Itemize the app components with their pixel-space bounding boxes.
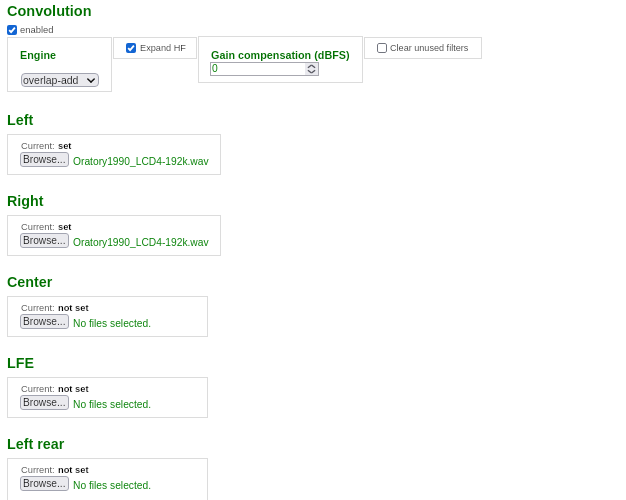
button[interactable]: 0 (210, 62, 319, 76)
button[interactable]: Current: (7, 458, 208, 500)
other: Engine dropdown (86, 75, 96, 85)
staticText: Center (7, 274, 53, 290)
staticText: Left (7, 112, 34, 128)
staticText: Browse... (23, 235, 66, 246)
staticText: set (58, 141, 72, 151)
staticText: No files selected. (73, 480, 152, 491)
staticText: Engine (20, 49, 56, 61)
button[interactable]: Browse... (20, 476, 69, 491)
staticText: Browse... (23, 478, 66, 489)
staticText: not set (58, 465, 89, 475)
button[interactable]: Browse... (20, 152, 69, 167)
staticText: LFE (7, 355, 35, 371)
staticText: No files selected. (73, 318, 152, 329)
staticText: enabled (20, 24, 54, 35)
staticText: Gain compensation (dBFS) (211, 49, 350, 61)
button[interactable]: Current: (7, 296, 208, 337)
staticText: Current: (21, 303, 58, 313)
button[interactable]: overlap-add (21, 73, 99, 87)
button[interactable]: Browse... (20, 314, 69, 329)
staticText: Convolution (7, 3, 92, 19)
staticText: Oratory1990_LCD4-192k.wav (73, 156, 209, 167)
staticText: 0 (212, 63, 218, 75)
staticText: Left rear (7, 436, 65, 452)
staticText: No files selected. (73, 399, 152, 410)
staticText: overlap-add (23, 74, 79, 86)
staticText: Current: (21, 141, 58, 151)
button[interactable]: Increase or decrease gain (305, 63, 318, 75)
button[interactable]: Expand HF (126, 43, 186, 53)
staticText: not set (58, 303, 89, 313)
staticText: Current: (21, 222, 58, 232)
staticText: Clear unused filters (390, 43, 469, 53)
button[interactable]: Browse... (20, 233, 69, 248)
staticText: Current: (21, 465, 58, 475)
button[interactable]: Clear unused filters (377, 43, 469, 53)
staticText: Oratory1990_LCD4-192k.wav (73, 237, 209, 248)
button[interactable]: enabled (7, 24, 54, 35)
staticText: Expand HF (140, 43, 186, 53)
staticText: Right (7, 193, 44, 209)
staticText: Current: (21, 384, 58, 394)
button[interactable]: Browse... (20, 395, 69, 410)
staticText: set (58, 222, 72, 232)
staticText: Browse... (23, 154, 66, 165)
staticText: Browse... (23, 316, 66, 327)
staticText: not set (58, 384, 89, 394)
staticText: Browse... (23, 397, 66, 408)
button[interactable]: Current: (7, 377, 208, 418)
button[interactable]: Current: (7, 215, 221, 256)
button[interactable]: Current: (7, 134, 221, 175)
